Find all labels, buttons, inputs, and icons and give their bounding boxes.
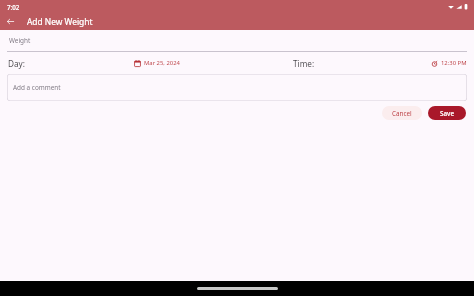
button[interactable]: Add a comment: [7, 74, 467, 101]
button[interactable]: Mar 25, 2024: [133, 57, 181, 69]
button[interactable]: Save: [428, 106, 466, 120]
button[interactable]: Back: [2, 13, 19, 30]
staticText: Day:: [8, 58, 25, 69]
staticText: Cancel: [392, 109, 412, 118]
staticText: Mar 25, 2024: [144, 59, 180, 67]
staticText: Add New Weight: [27, 16, 93, 27]
staticText: Weight: [9, 36, 31, 45]
staticText: Time:: [293, 58, 315, 69]
button[interactable]: 12:30 PM: [430, 57, 468, 69]
staticText: 12:30 PM: [441, 59, 467, 67]
staticText: Save: [440, 109, 454, 118]
staticText: 7:02: [7, 3, 20, 11]
button[interactable]: Cancel: [382, 106, 422, 120]
staticText: Add a comment: [13, 83, 61, 92]
